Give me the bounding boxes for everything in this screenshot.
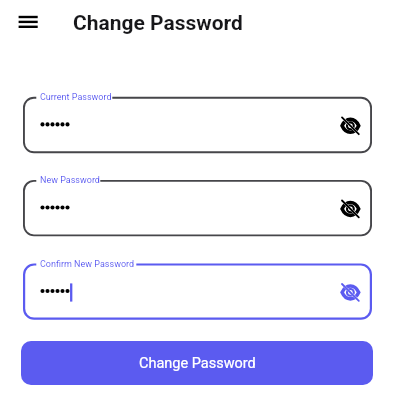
button[interactable]: Show password bbox=[332, 274, 368, 310]
button[interactable]: Show password bbox=[332, 107, 368, 143]
staticText: Current Password bbox=[40, 92, 112, 103]
button[interactable]: Show password bbox=[332, 190, 368, 226]
staticText: Change Password bbox=[73, 11, 243, 36]
button[interactable]: Current Password bbox=[23, 97, 372, 153]
button[interactable]: Confirm New Password bbox=[23, 263, 372, 319]
button[interactable]: New Password bbox=[23, 180, 372, 236]
staticText: New Password bbox=[40, 175, 100, 186]
button[interactable]: Open navigation menu bbox=[10, 4, 46, 40]
button[interactable]: Change Password bbox=[21, 341, 373, 385]
staticText: Change Password bbox=[139, 355, 256, 372]
staticText: Confirm New Password bbox=[40, 259, 135, 270]
